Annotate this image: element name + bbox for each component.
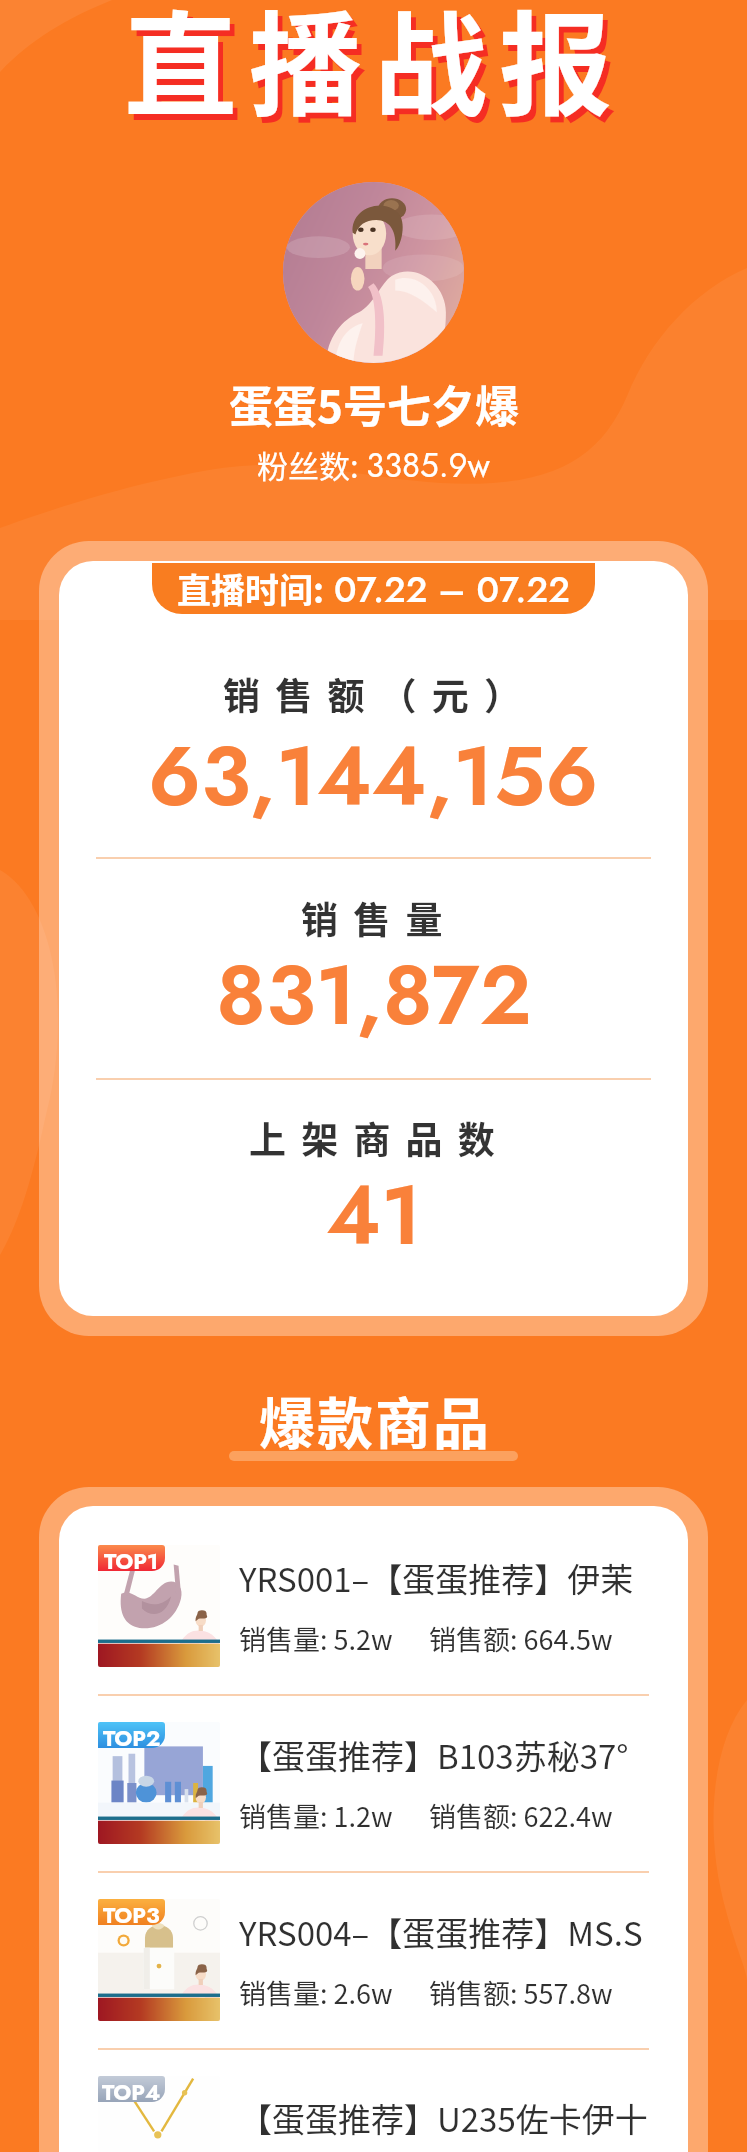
staticText: 07.22 – 07.22 bbox=[334, 563, 570, 614]
staticText: 蛋蛋5号七夕爆 bbox=[229, 372, 519, 436]
staticText: 【蛋蛋推荐】U235佐卡伊十 bbox=[239, 2094, 648, 2142]
staticText: 销售额: 664.5w bbox=[429, 1619, 613, 1658]
staticText: 上 架 商 品 数 bbox=[249, 1111, 499, 1165]
staticText: 销售额: 622.4w bbox=[429, 1796, 613, 1835]
button[interactable]: TOP3 bbox=[59, 1873, 688, 2048]
staticText: 直播时间: bbox=[177, 564, 325, 613]
staticText: 销售额: 557.8w bbox=[429, 1973, 613, 2012]
staticText: 41 bbox=[326, 1155, 422, 1275]
staticText: 63,144,156 bbox=[148, 716, 599, 836]
staticText: 销 售 量 bbox=[301, 891, 446, 945]
staticText: 【蛋蛋推荐】B103苏秘37° bbox=[239, 1731, 629, 1779]
button[interactable]: 直播时间: bbox=[152, 563, 595, 614]
staticText: 销售量: 1.2w bbox=[239, 1796, 393, 1835]
staticText: YRS001–【蛋蛋推荐】伊茉 bbox=[239, 1554, 634, 1602]
staticText: 销售量: 5.2w bbox=[239, 1619, 393, 1658]
staticText: 销售量: 2.6w bbox=[239, 1973, 393, 2012]
staticText: 粉丝数: bbox=[257, 442, 359, 487]
button[interactable]: TOP4 bbox=[59, 2050, 688, 2152]
staticText: TOP4 bbox=[102, 2076, 161, 2102]
staticText: TOP2 bbox=[103, 1722, 161, 1748]
staticText: 爆款商品 bbox=[258, 1379, 490, 1460]
button[interactable]: TOP1 bbox=[59, 1519, 688, 1694]
staticText: TOP1 bbox=[104, 1545, 159, 1571]
staticText: YRS004–【蛋蛋推荐】MS.S bbox=[239, 1908, 643, 1956]
staticText: 直播战报 bbox=[124, 0, 624, 139]
staticText: 直播战报 bbox=[129, 0, 629, 145]
staticText: 销 售 额 （ 元 ） bbox=[223, 667, 525, 721]
staticText: TOP3 bbox=[103, 1899, 160, 1925]
staticText: 831,872 bbox=[216, 935, 532, 1055]
staticText: 3385.9w bbox=[366, 442, 491, 490]
button[interactable]: TOP2 bbox=[59, 1696, 688, 1871]
